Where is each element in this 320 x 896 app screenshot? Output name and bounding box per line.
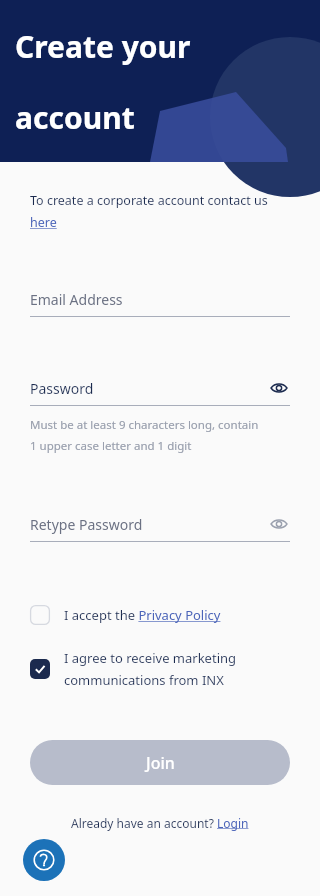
staticText: Email Address <box>30 290 123 309</box>
button[interactable]: Join <box>30 740 290 785</box>
staticText: Create your <box>15 26 191 67</box>
staticText: Already have an account? Login <box>71 815 249 831</box>
button[interactable]: Show password <box>268 377 290 399</box>
staticText: I accept the Privacy Policy <box>64 606 221 624</box>
staticText: here <box>30 214 57 231</box>
staticText: Must be at least 9 characters long, cont… <box>30 417 259 433</box>
button[interactable]: I agree to receive marketing <box>0 647 320 691</box>
staticText: communications from INX <box>64 671 224 689</box>
button[interactable]: here <box>30 214 57 231</box>
staticText: Join <box>146 752 175 774</box>
staticText: I agree to receive marketing <box>64 649 237 667</box>
button[interactable]: Email Address <box>30 286 290 312</box>
button[interactable]: Password <box>30 375 290 401</box>
staticText: account <box>15 97 135 138</box>
button[interactable]: Already have an account? Login <box>71 815 249 831</box>
button[interactable]: Help <box>23 839 65 881</box>
staticText: Password <box>30 379 94 398</box>
staticText: To create a corporate account contact us <box>30 192 268 209</box>
button[interactable]: I accept the Privacy Policy <box>0 601 320 629</box>
button[interactable]: Retype Password <box>30 511 290 537</box>
staticText: Retype Password <box>30 515 143 534</box>
staticText: 1 upper case letter and 1 digit <box>30 438 192 454</box>
button[interactable]: Show password <box>268 513 290 535</box>
